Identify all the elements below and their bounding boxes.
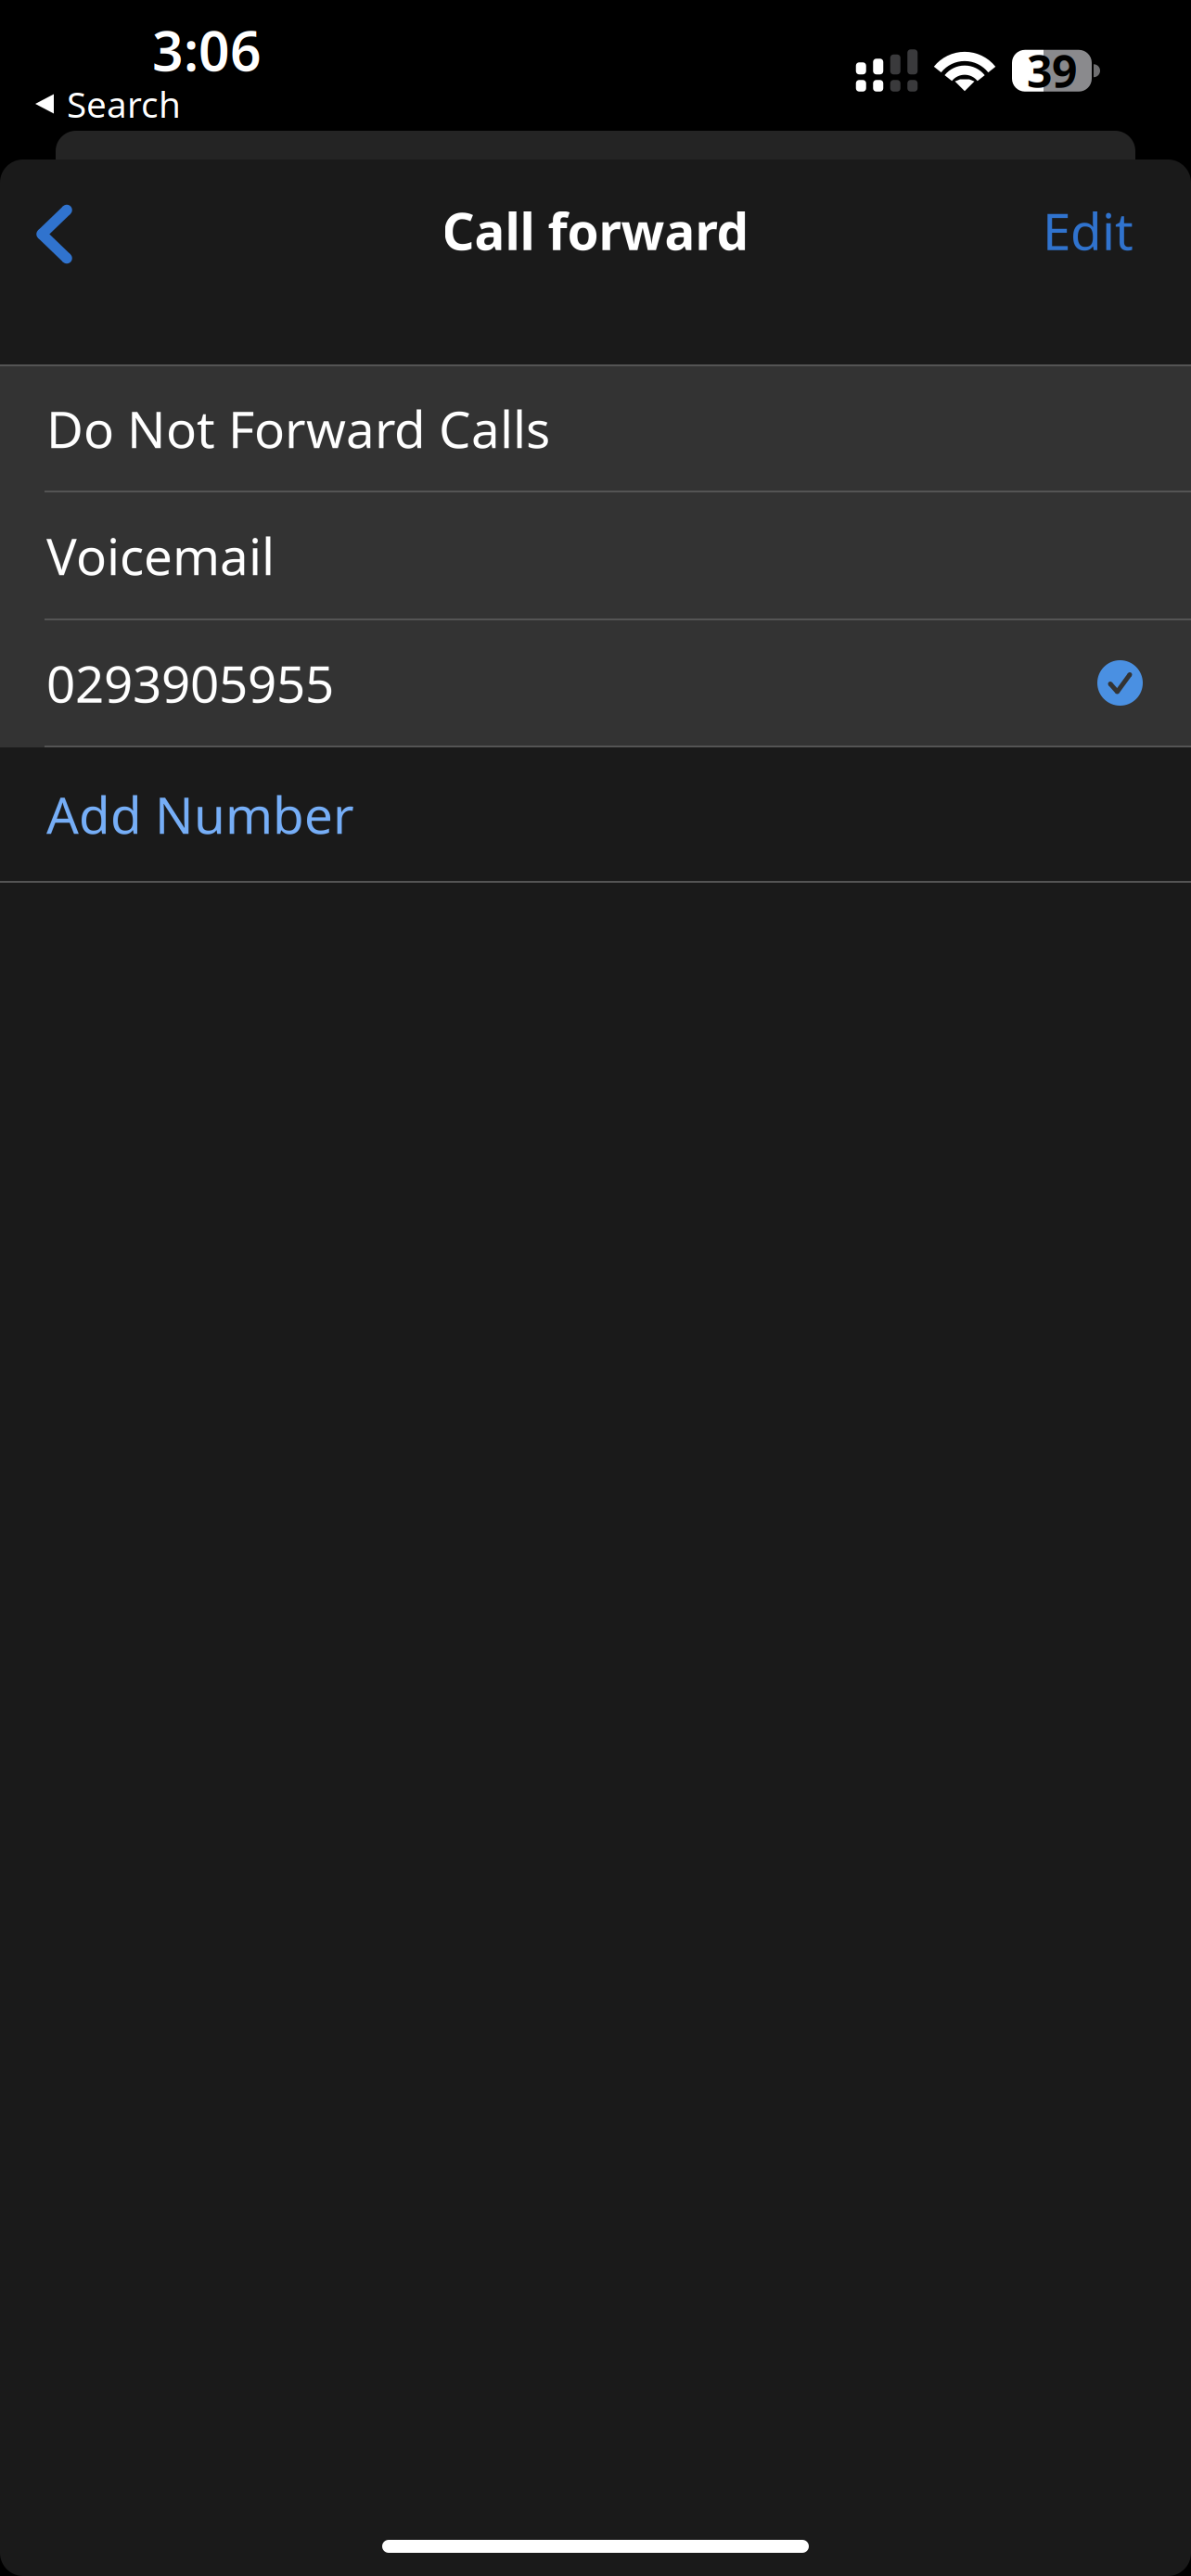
staticText: 0293905955 — [46, 649, 334, 717]
staticText: Call forward — [442, 197, 749, 264]
button[interactable]: Do Not Forward Calls — [0, 366, 1191, 491]
staticText: Edit — [1043, 197, 1133, 264]
staticText: 39 — [1027, 41, 1077, 100]
staticText: Do Not Forward Calls — [46, 395, 550, 462]
button[interactable]: 0293905955 — [0, 620, 1191, 746]
button[interactable]: Voicemail — [0, 492, 1191, 618]
staticText: 3:06 — [152, 14, 262, 86]
staticText: Voicemail — [46, 522, 275, 589]
button[interactable]: Search — [0, 83, 203, 124]
button[interactable]: Edit — [1017, 159, 1191, 301]
staticText: Search — [67, 80, 181, 128]
button[interactable]: Back — [0, 159, 98, 301]
button[interactable]: Add Number — [0, 747, 1191, 881]
staticText: Add Number — [46, 780, 354, 848]
